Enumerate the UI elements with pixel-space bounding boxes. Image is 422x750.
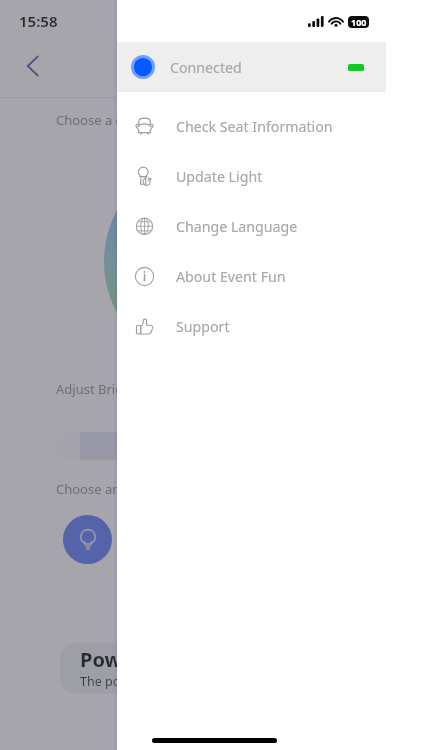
staticText: About Event Fun [176,267,286,286]
staticText: Support [176,317,230,336]
staticText: Update Light [176,167,263,186]
staticText: 15:58 [19,11,58,31]
staticText: The power is on [80,673,174,690]
staticText: Power [80,646,143,673]
staticText: Connected [170,58,242,77]
button[interactable] [63,515,112,564]
button[interactable]: About Event Fun [117,251,422,301]
staticText: Choose a colour [56,111,155,129]
button[interactable] [56,432,366,460]
button[interactable]: Power [60,643,370,694]
button[interactable]: Check Seat Information [117,101,422,151]
button[interactable]: Connected [117,42,386,92]
staticText: Check Seat Information [176,117,333,136]
button[interactable] [104,153,321,370]
button[interactable]: Support [117,301,422,351]
staticText: Change Language [176,217,298,236]
button[interactable]: Back [22,54,46,78]
staticText: 100 [351,16,367,28]
staticText: Adjust Brightness [56,380,164,398]
button[interactable]: Change Language [117,201,422,251]
staticText: Choose an effect [56,480,159,498]
button[interactable]: Update Light [117,151,422,201]
